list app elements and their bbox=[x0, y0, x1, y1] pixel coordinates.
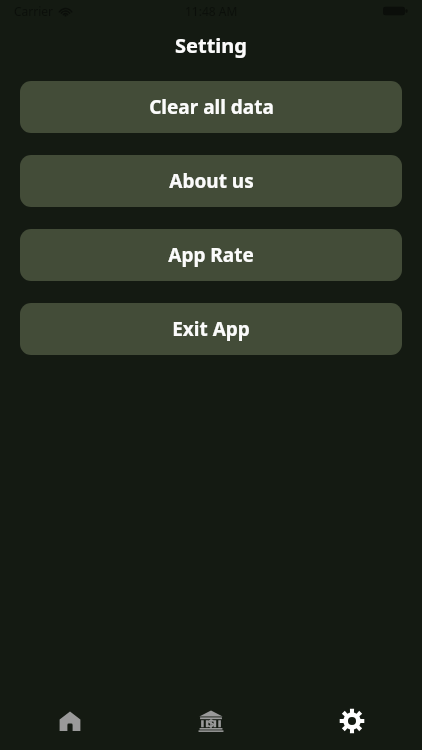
button[interactable]: Clear all data bbox=[20, 81, 402, 133]
staticText: Setting bbox=[175, 32, 247, 59]
staticText: 11:48 AM bbox=[185, 3, 238, 19]
button[interactable]: Bank bbox=[140, 692, 281, 750]
staticText: Clear all data bbox=[149, 94, 274, 120]
staticText: App Rate bbox=[168, 242, 254, 268]
staticText: Exit App bbox=[172, 316, 250, 342]
button[interactable]: Settings bbox=[281, 692, 422, 750]
button[interactable]: Exit App bbox=[20, 303, 402, 355]
button[interactable]: App Rate bbox=[20, 229, 402, 281]
button[interactable]: About us bbox=[20, 155, 402, 207]
staticText: About us bbox=[169, 168, 254, 194]
button[interactable]: Home bbox=[0, 692, 140, 750]
staticText: Carrier bbox=[14, 3, 54, 19]
